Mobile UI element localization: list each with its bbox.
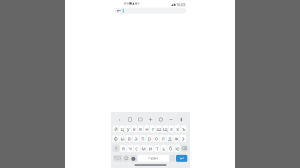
button[interactable]: ?123	[113, 155, 122, 162]
staticText: б	[169, 145, 172, 152]
button[interactable]: ю	[174, 145, 180, 152]
button[interactable]: н	[144, 125, 149, 132]
staticText: ☺	[124, 156, 128, 161]
staticText: ю	[175, 145, 179, 152]
button[interactable]: ●	[130, 155, 137, 162]
staticText: у	[127, 125, 130, 132]
staticText: ш	[157, 125, 162, 132]
button[interactable]: а	[133, 135, 139, 142]
button[interactable]: Keyboard tool	[137, 116, 144, 122]
button[interactable]: Keyboard tool	[178, 116, 185, 122]
staticText: з	[170, 125, 173, 132]
staticText: ‹	[119, 116, 121, 123]
button[interactable]: х	[175, 125, 180, 132]
staticText: х	[176, 125, 179, 132]
staticText: щ	[163, 125, 168, 132]
button[interactable]: и	[147, 145, 153, 152]
button[interactable]: ъ	[181, 125, 187, 132]
staticText: Русский	[148, 157, 158, 160]
staticText: ←	[117, 8, 121, 14]
staticText: л	[161, 135, 164, 142]
staticText: е	[139, 125, 142, 132]
staticText: м	[141, 145, 145, 152]
button[interactable]: о	[153, 135, 159, 142]
staticText: ?123	[114, 157, 121, 160]
staticText: ж	[174, 135, 178, 142]
staticText: с	[135, 145, 138, 152]
staticText: а	[134, 135, 137, 142]
staticText: т	[156, 145, 158, 152]
button[interactable]: ж	[173, 135, 179, 142]
staticText: п	[141, 135, 144, 142]
staticText: ⇧	[114, 146, 117, 151]
button[interactable]: г	[150, 125, 156, 132]
button[interactable]: Русский	[138, 155, 169, 162]
button[interactable]: я	[120, 145, 126, 152]
button[interactable]: м	[140, 145, 146, 152]
staticText: ц	[120, 125, 123, 132]
staticText: я	[122, 145, 125, 152]
button[interactable]: ↵	[176, 155, 187, 162]
button[interactable]: Keyboard tool	[147, 116, 154, 122]
staticText: г	[152, 125, 154, 132]
button[interactable]: Keyboard tool	[126, 116, 133, 122]
button[interactable]: ☺	[123, 155, 129, 162]
staticText: 16:03	[176, 2, 185, 7]
button[interactable]: л	[160, 135, 166, 142]
staticText: р	[148, 135, 151, 142]
staticText: ↵	[180, 155, 184, 161]
staticText: д	[168, 135, 171, 142]
button[interactable]: ш	[156, 125, 162, 132]
staticText: в	[128, 135, 131, 142]
staticText: ъ	[182, 125, 185, 132]
staticText: ь	[162, 145, 165, 152]
staticText: к	[133, 125, 136, 132]
button[interactable]: в	[126, 135, 132, 142]
button[interactable]: з	[169, 125, 174, 132]
button[interactable]: ы	[119, 135, 125, 142]
button[interactable]: ←	[114, 8, 186, 14]
button[interactable]: к	[132, 125, 137, 132]
button[interactable]: е	[138, 125, 143, 132]
button[interactable]: у	[125, 125, 131, 132]
button[interactable]: ⇧	[113, 145, 119, 152]
staticText: и	[149, 145, 152, 152]
staticText: ч	[128, 145, 131, 152]
button[interactable]: .	[170, 155, 175, 162]
button[interactable]: й	[113, 125, 118, 132]
staticText: э	[182, 135, 185, 142]
staticText: ф	[114, 135, 118, 142]
button[interactable]: ц	[119, 125, 125, 132]
button[interactable]: щ	[162, 125, 168, 132]
staticText: ●	[131, 155, 136, 161]
button[interactable]: ф	[113, 135, 119, 142]
staticText: ы	[120, 135, 124, 142]
button[interactable]: т	[154, 145, 160, 152]
button[interactable]: с	[134, 145, 140, 152]
button[interactable]: п	[140, 135, 146, 142]
button[interactable]: р	[146, 135, 152, 142]
button[interactable]: ч	[127, 145, 133, 152]
button[interactable]: д	[167, 135, 173, 142]
staticText: .	[172, 156, 173, 161]
button[interactable]: Keyboard tool	[168, 116, 175, 122]
staticText: н	[145, 125, 148, 132]
staticText: й	[114, 125, 117, 132]
button[interactable]: ь	[161, 145, 167, 152]
button[interactable]: Keyboard tool	[157, 116, 164, 122]
button[interactable]: э	[180, 135, 186, 142]
button[interactable]: б	[167, 145, 173, 152]
staticText: ⌫	[181, 146, 187, 151]
staticText: о	[155, 135, 158, 142]
button[interactable]: ⌫	[181, 145, 188, 152]
button[interactable]: Keyboard tool	[116, 116, 123, 123]
